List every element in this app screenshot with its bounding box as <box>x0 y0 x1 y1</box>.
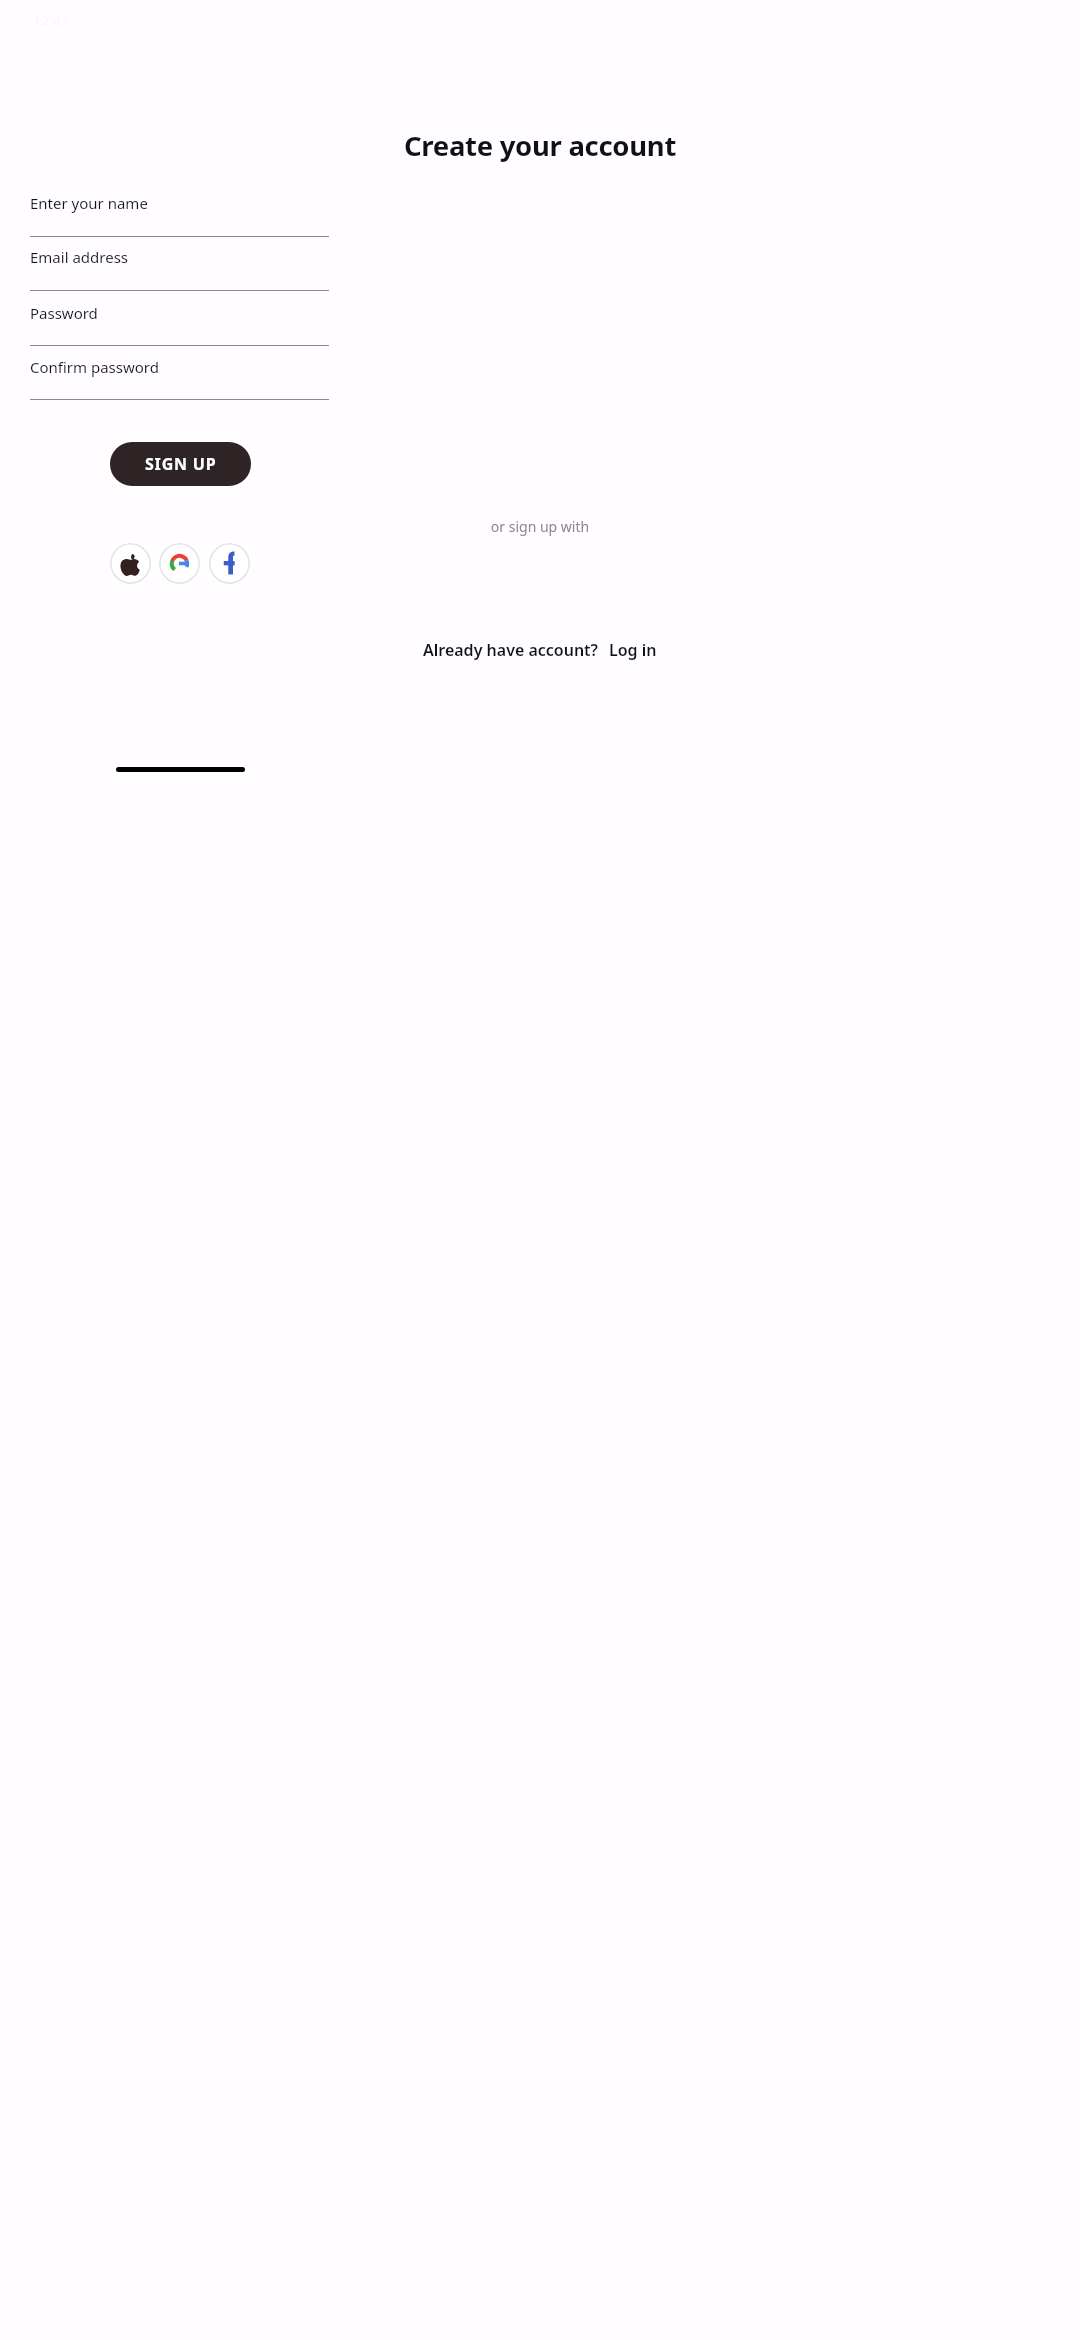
button[interactable]: Confirm password <box>30 346 329 399</box>
button[interactable]: Sign up with Apple <box>110 543 151 584</box>
button[interactable]: Email address <box>30 236 329 289</box>
button[interactable]: Already have account? <box>423 639 598 661</box>
staticText: Create your account <box>0 127 1080 164</box>
button[interactable]: Password <box>30 292 329 345</box>
staticText: Email address <box>30 247 129 267</box>
button[interactable]: Enter your name <box>30 182 329 235</box>
staticText: Enter your name <box>30 193 148 213</box>
staticText: SIGN UP <box>145 453 217 475</box>
button[interactable]: Sign up with Facebook <box>209 543 250 584</box>
staticText: Confirm password <box>30 357 159 377</box>
button[interactable]: SIGN UP <box>110 442 251 486</box>
button[interactable]: Sign up with Google <box>159 543 200 584</box>
button[interactable]: Log in <box>609 639 657 661</box>
staticText: Password <box>30 303 98 323</box>
staticText: or sign up with <box>0 517 1080 536</box>
